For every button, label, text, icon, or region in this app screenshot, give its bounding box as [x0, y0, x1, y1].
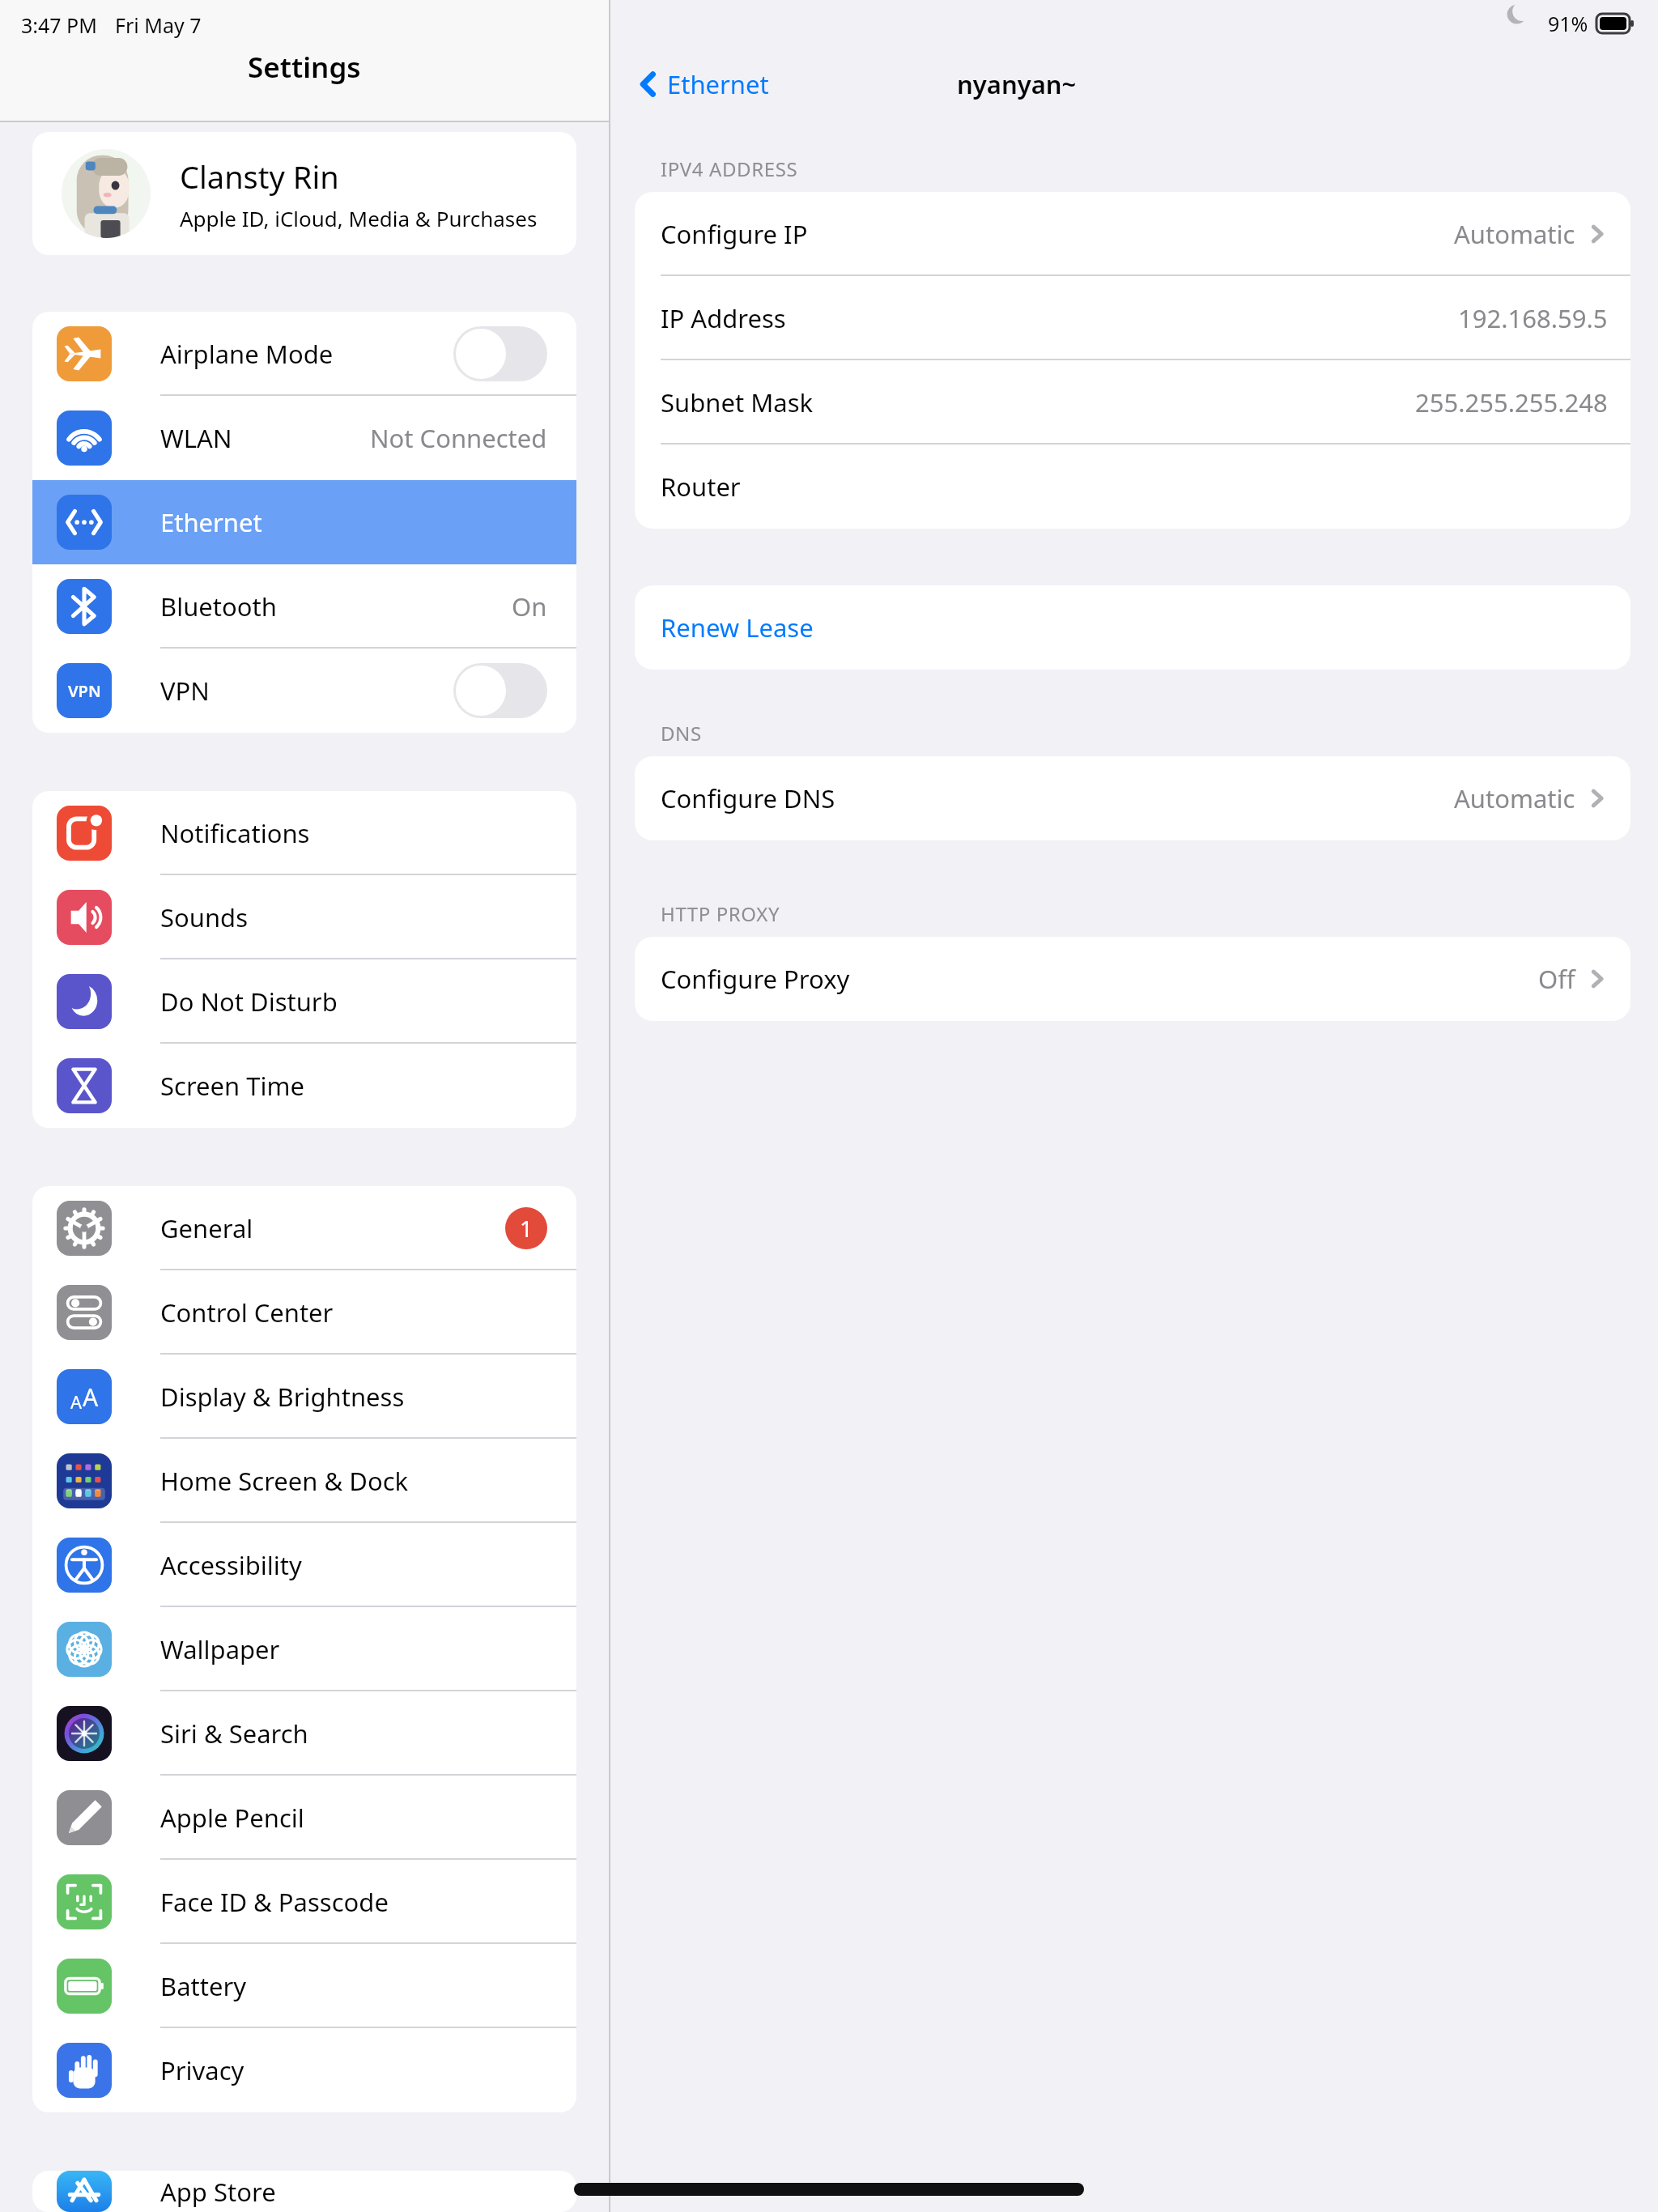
button[interactable]: WLAN — [32, 396, 576, 480]
staticText: IP Address — [661, 301, 786, 335]
button[interactable]: Wallpaper — [32, 1607, 576, 1691]
staticText: Screen Time — [160, 1069, 304, 1103]
button[interactable]: Configure DNS — [635, 756, 1630, 840]
staticText: Configure IP — [661, 217, 808, 251]
staticText: Accessibility — [160, 1548, 302, 1582]
staticText: Wallpaper — [160, 1632, 280, 1666]
button[interactable]: Subnet Mask — [635, 360, 1630, 445]
button[interactable]: Home Screen & Dock — [32, 1439, 576, 1523]
staticText: General — [160, 1211, 253, 1245]
button[interactable]: Toggle — [453, 326, 547, 381]
staticText: Control Center — [160, 1295, 334, 1329]
staticText: HTTP PROXY — [661, 900, 780, 927]
button[interactable]: Battery — [32, 1944, 576, 2028]
staticText: Settings — [248, 48, 361, 87]
staticText: Privacy — [160, 2053, 244, 2087]
staticText: Clansty Rin — [180, 155, 339, 198]
staticText: 3:47 PM — [21, 11, 97, 39]
staticText: Fri May 7 — [115, 11, 202, 39]
button[interactable]: Apple Pencil — [32, 1776, 576, 1860]
staticText: Off — [1538, 962, 1575, 996]
staticText: IPV4 ADDRESS — [661, 155, 798, 182]
staticText: 192.168.59.5 — [1458, 301, 1608, 335]
staticText: Configure DNS — [661, 781, 835, 815]
button[interactable]: Ethernet — [32, 480, 576, 564]
staticText: DNS — [661, 720, 702, 747]
button[interactable]: VPN — [32, 649, 576, 733]
button[interactable]: App Store — [32, 2171, 576, 2212]
staticText: Airplane Mode — [160, 337, 334, 371]
button[interactable]: Configure IP — [635, 192, 1630, 276]
staticText: Renew Lease — [661, 610, 814, 644]
button[interactable]: Configure Proxy — [635, 937, 1630, 1021]
button[interactable]: Face ID & Passcode — [32, 1860, 576, 1944]
staticText: Automatic — [1454, 781, 1575, 815]
staticText: A — [83, 1380, 99, 1414]
button[interactable]: Toggle — [453, 663, 547, 718]
staticText: Router — [661, 470, 741, 504]
button[interactable]: A — [32, 1355, 576, 1439]
staticText: Display & Brightness — [160, 1380, 405, 1414]
button[interactable]: IP Address — [635, 276, 1630, 360]
staticText: nyanyan~ — [957, 67, 1077, 101]
staticText: WLAN — [160, 421, 232, 455]
staticText: Notifications — [160, 816, 310, 850]
button[interactable]: Airplane Mode — [32, 312, 576, 396]
staticText: Configure Proxy — [661, 962, 850, 996]
staticText: Apple Pencil — [160, 1801, 304, 1835]
staticText: Battery — [160, 1969, 247, 2003]
staticText: Apple ID, iCloud, Media & Purchases — [180, 204, 538, 232]
button[interactable]: Notifications — [32, 791, 576, 875]
staticText: Do Not Disturb — [160, 985, 338, 1019]
button[interactable]: Do Not Disturb — [32, 959, 576, 1044]
button[interactable]: Sounds — [32, 875, 576, 959]
staticText: Ethernet — [160, 505, 262, 539]
button[interactable]: Bluetooth — [32, 564, 576, 649]
button[interactable]: Privacy — [32, 2028, 576, 2112]
button[interactable]: Ethernet — [628, 61, 776, 108]
staticText: VPN — [68, 680, 101, 702]
staticText: 91% — [1548, 10, 1588, 37]
button[interactable]: Accessibility — [32, 1523, 576, 1607]
staticText: Not Connected — [370, 421, 547, 455]
staticText: Subnet Mask — [661, 385, 814, 419]
staticText: Siri & Search — [160, 1716, 308, 1750]
staticText: Ethernet — [667, 67, 769, 101]
button[interactable]: Screen Time — [32, 1044, 576, 1128]
button[interactable]: General — [32, 1186, 576, 1270]
staticText: VPN — [160, 674, 210, 708]
staticText: A — [70, 1389, 83, 1414]
staticText: Sounds — [160, 900, 249, 934]
staticText: Bluetooth — [160, 589, 277, 623]
staticText: On — [512, 589, 547, 623]
button[interactable]: Router — [635, 445, 1630, 529]
staticText: App Store — [160, 2175, 276, 2209]
button[interactable]: Clansty Rin — [32, 132, 576, 255]
button[interactable]: Siri & Search — [32, 1691, 576, 1776]
button[interactable]: Control Center — [32, 1270, 576, 1355]
staticText: 1 — [520, 1213, 534, 1244]
button[interactable]: Renew Lease — [635, 585, 1630, 670]
staticText: Automatic — [1454, 217, 1575, 251]
staticText: 255.255.255.248 — [1415, 385, 1608, 419]
staticText: Home Screen & Dock — [160, 1464, 409, 1498]
staticText: Face ID & Passcode — [160, 1885, 389, 1919]
